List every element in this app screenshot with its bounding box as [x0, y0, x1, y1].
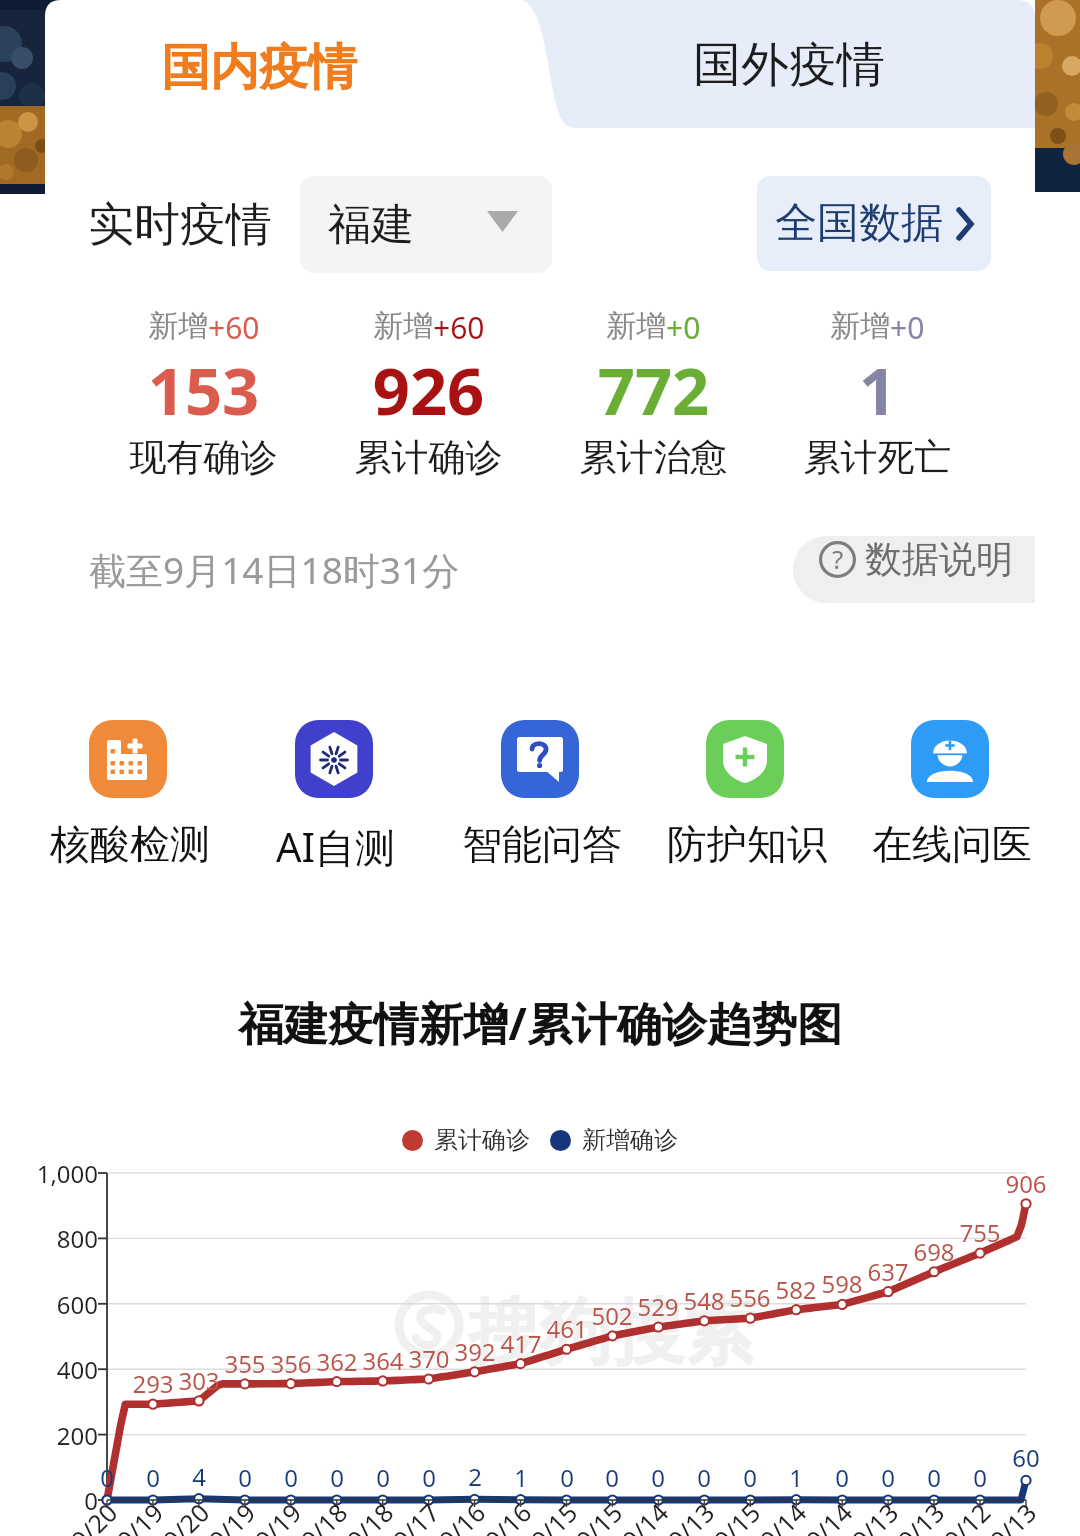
staticText: 637 — [848, 1255, 928, 1288]
staticText: 新增确诊 — [582, 1125, 678, 1155]
staticText: 累计确诊 — [434, 1125, 530, 1155]
staticText: 1 — [756, 1461, 836, 1494]
staticText: 9/19 — [247, 1495, 308, 1536]
staticText: +0 — [666, 307, 701, 348]
staticText: +60 — [433, 307, 485, 348]
staticText: 在线问医 — [872, 819, 1032, 869]
staticText: +60 — [208, 307, 260, 348]
staticText: 529 — [618, 1290, 698, 1323]
staticText: 0 — [389, 1461, 469, 1494]
staticText: 582 — [756, 1273, 836, 1306]
staticText: 0 — [67, 1461, 147, 1494]
button[interactable]: 全国数据 — [757, 176, 991, 271]
staticText: 356 — [251, 1347, 331, 1380]
button[interactable]: 国内疫情 — [45, 5, 545, 133]
staticText: 153 — [91, 346, 316, 435]
button[interactable]: ? — [793, 536, 1035, 603]
button[interactable]: 智能问答 — [430, 720, 650, 869]
staticText: 9/14 — [798, 1495, 859, 1536]
staticText: 1 — [481, 1461, 561, 1494]
button[interactable]: 在线问医 — [840, 720, 1060, 869]
staticText: 598 — [802, 1267, 882, 1300]
staticText: 累计死亡 — [765, 434, 990, 481]
button[interactable]: 防护知识 — [635, 720, 855, 869]
staticText: 9/16 — [477, 1495, 538, 1536]
staticText: 0 — [343, 1461, 423, 1494]
staticText: 9/19 — [201, 1495, 262, 1536]
staticText: 9/16 — [431, 1495, 492, 1536]
button[interactable]: 福建 — [300, 176, 552, 273]
staticText: 9/18 — [339, 1495, 400, 1536]
staticText: 国外疫情 — [693, 35, 885, 95]
staticText: 9/13 — [890, 1495, 951, 1536]
staticText: 0 — [205, 1461, 285, 1494]
staticText: 搜狗搜索 — [468, 1288, 756, 1379]
staticText: 0 — [664, 1461, 744, 1494]
staticText: ? — [832, 541, 844, 576]
staticText: 392 — [435, 1335, 515, 1368]
staticText: 772 — [541, 346, 766, 435]
staticText: 现有确诊 — [91, 434, 316, 481]
staticText: 906 — [986, 1167, 1066, 1200]
staticText: 截至9月14日18时31分 — [89, 544, 460, 595]
staticText: 0 — [297, 1461, 377, 1494]
staticText: 新增 — [148, 307, 208, 345]
staticText: 370 — [389, 1342, 469, 1375]
staticText: 556 — [710, 1281, 790, 1314]
staticText: 548 — [664, 1284, 744, 1317]
staticText: 755 — [940, 1216, 1020, 1249]
staticText: 数据说明 — [865, 536, 1013, 583]
staticText: 364 — [343, 1344, 423, 1377]
staticText: 9/13 — [982, 1495, 1043, 1536]
staticText: 福建疫情新增/累计确诊趋势图 — [0, 992, 1080, 1053]
staticText: 累计治愈 — [541, 434, 766, 481]
staticText: 293 — [113, 1367, 193, 1400]
staticText: 0 — [572, 1461, 652, 1494]
staticText: 502 — [572, 1299, 652, 1332]
staticText: 461 — [527, 1312, 607, 1345]
staticText: 0 — [802, 1461, 882, 1494]
staticText: 200 — [0, 1419, 98, 1452]
staticText: 9/18 — [293, 1495, 354, 1536]
staticText: 0 — [113, 1461, 193, 1494]
other: 防护知识 — [706, 720, 784, 798]
staticText: 800 — [0, 1222, 98, 1255]
staticText: 9/14 — [614, 1495, 675, 1536]
button[interactable]: 国外疫情 — [575, 1, 1035, 129]
staticText: 1,000 — [0, 1157, 98, 1190]
staticText: 0 — [527, 1461, 607, 1494]
staticText: 9/15 — [568, 1495, 629, 1536]
staticText: 4 — [159, 1460, 239, 1493]
staticText: 698 — [894, 1235, 974, 1268]
staticText: 400 — [0, 1353, 98, 1386]
staticText: 实时疫情 — [88, 196, 272, 254]
staticText: 0 — [940, 1461, 1020, 1494]
staticText: 智能问答 — [462, 819, 622, 869]
staticText: 926 — [316, 346, 541, 435]
staticText: 0 — [618, 1461, 698, 1494]
staticText: 9/15 — [523, 1495, 584, 1536]
staticText: 9/20 — [63, 1495, 124, 1536]
button[interactable]: AI自测 — [224, 720, 444, 874]
staticText: 国内疫情 — [161, 37, 357, 99]
staticText: 0 — [710, 1461, 790, 1494]
staticText: 防护知识 — [667, 819, 827, 869]
staticText: 9/20 — [155, 1495, 216, 1536]
staticText: +0 — [890, 307, 925, 348]
staticText: 新增 — [373, 307, 433, 345]
staticText: 9/13 — [660, 1495, 721, 1536]
staticText: 355 — [205, 1347, 285, 1380]
other: 在线问医 — [911, 720, 989, 798]
staticText: 0 — [848, 1461, 928, 1494]
other: 核酸检测 — [89, 720, 167, 798]
staticText: 核酸检测 — [50, 819, 210, 869]
staticText: 600 — [0, 1288, 98, 1321]
staticText: 0 — [894, 1461, 974, 1494]
staticText: 9/14 — [752, 1495, 813, 1536]
staticText: 417 — [481, 1327, 561, 1360]
staticText: 362 — [297, 1345, 377, 1378]
staticText: 累计确诊 — [316, 434, 541, 481]
staticText: 新增 — [830, 307, 890, 345]
staticText: 福建 — [328, 198, 414, 252]
button[interactable]: 核酸检测 — [18, 720, 238, 869]
